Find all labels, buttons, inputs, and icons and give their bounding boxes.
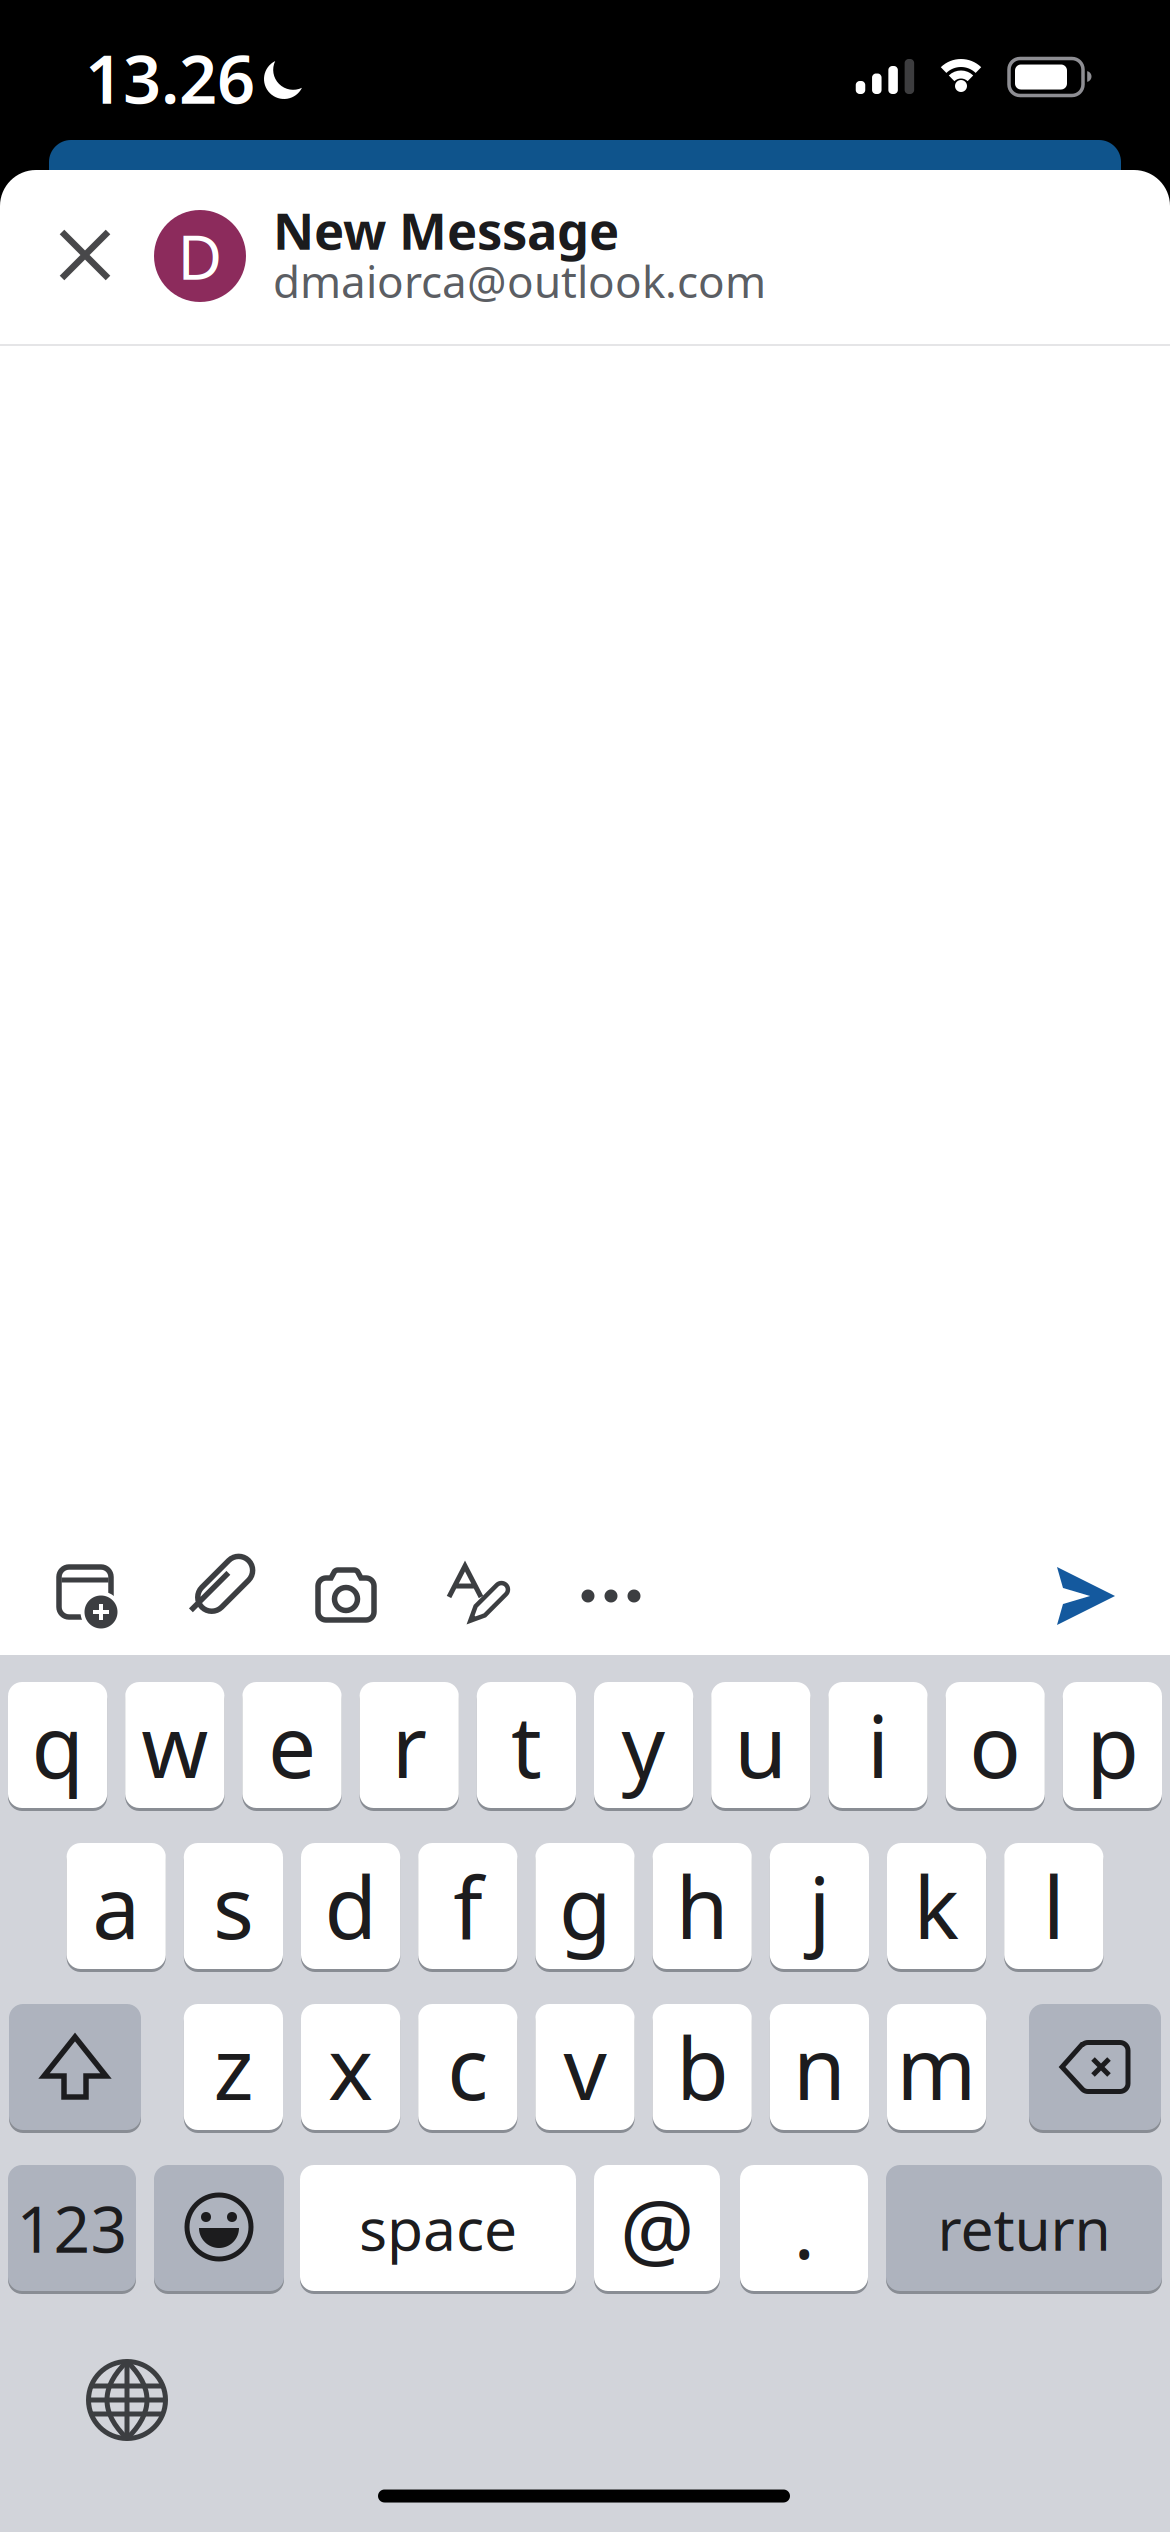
staticText: a <box>92 1849 140 1963</box>
staticText: 13.26 <box>85 34 255 122</box>
staticText: u <box>734 1688 787 1802</box>
button[interactable] <box>154 2165 284 2291</box>
staticText: r <box>392 1688 427 1802</box>
staticText: @ <box>620 2173 694 2283</box>
staticText: g <box>559 1849 611 1963</box>
button[interactable]: s <box>184 1843 283 1969</box>
staticText: w <box>141 1688 208 1802</box>
button[interactable]: v <box>535 2004 635 2130</box>
staticText: s <box>213 1849 254 1963</box>
staticText: d <box>325 1849 377 1963</box>
button[interactable] <box>9 2004 141 2130</box>
button[interactable] <box>76 2349 177 2450</box>
button[interactable]: b <box>653 2004 752 2130</box>
staticText: p <box>1086 1688 1138 1802</box>
staticText: space <box>359 2189 517 2267</box>
staticText: z <box>213 2010 253 2124</box>
staticText: k <box>914 1849 960 1963</box>
button[interactable] <box>310 1557 382 1629</box>
staticText: c <box>447 2010 488 2124</box>
button[interactable] <box>571 1566 651 1626</box>
staticText: y <box>622 1688 666 1802</box>
staticText: h <box>676 1849 729 1963</box>
button[interactable]: l <box>1004 1843 1103 1969</box>
staticText: t <box>511 1688 542 1802</box>
button[interactable]: q <box>8 1682 107 1808</box>
button[interactable]: a <box>67 1843 166 1969</box>
button[interactable]: space <box>300 2165 576 2291</box>
button[interactable]: i <box>828 1682 928 1808</box>
staticText: b <box>676 2010 728 2124</box>
staticText: m <box>897 2010 977 2124</box>
button[interactable]: . <box>740 2165 868 2291</box>
staticText: o <box>969 1688 1021 1802</box>
button[interactable]: @ <box>594 2165 720 2291</box>
staticText: New Message <box>273 196 619 264</box>
button[interactable]: j <box>770 1843 869 1969</box>
button[interactable]: y <box>594 1682 693 1808</box>
button[interactable]: n <box>770 2004 869 2130</box>
button[interactable] <box>52 1560 124 1632</box>
button[interactable]: m <box>887 2004 986 2130</box>
button[interactable] <box>1048 1559 1124 1633</box>
staticText: return <box>937 2189 1110 2267</box>
staticText: l <box>1043 1849 1065 1963</box>
staticText: q <box>32 1688 84 1802</box>
button[interactable]: x <box>301 2004 400 2130</box>
button[interactable] <box>178 1555 254 1631</box>
button[interactable]: c <box>418 2004 517 2130</box>
staticText: . <box>793 2175 814 2281</box>
staticText: f <box>453 1849 482 1963</box>
button[interactable]: w <box>125 1682 224 1808</box>
button[interactable] <box>440 1560 516 1632</box>
staticText: D <box>177 215 222 297</box>
button[interactable]: k <box>887 1843 986 1969</box>
button[interactable] <box>48 218 122 292</box>
button[interactable]: return <box>886 2165 1162 2291</box>
staticText: i <box>867 1688 889 1802</box>
staticText: 123 <box>16 2185 127 2270</box>
staticText: e <box>268 1688 316 1802</box>
button[interactable]: z <box>184 2004 283 2130</box>
button[interactable]: g <box>535 1843 635 1969</box>
button[interactable]: e <box>242 1682 342 1808</box>
button[interactable]: t <box>477 1682 576 1808</box>
button[interactable]: h <box>653 1843 752 1969</box>
button[interactable]: o <box>946 1682 1045 1808</box>
button[interactable]: p <box>1063 1682 1162 1808</box>
button[interactable]: f <box>418 1843 517 1969</box>
button[interactable] <box>1029 2004 1161 2130</box>
staticText: x <box>328 2010 373 2124</box>
button[interactable]: r <box>360 1682 459 1808</box>
button[interactable]: d <box>301 1843 400 1969</box>
staticText: dmaiorca@outlook.com <box>273 252 766 310</box>
button[interactable]: 123 <box>8 2165 136 2291</box>
staticText: n <box>793 2010 846 2124</box>
button[interactable]: u <box>711 1682 810 1808</box>
staticText: j <box>808 1849 830 1963</box>
staticText: v <box>563 2010 606 2124</box>
